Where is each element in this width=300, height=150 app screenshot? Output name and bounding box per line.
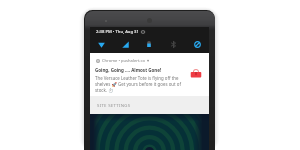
staticText: The Versace Leather Tote is flying off t…: [95, 75, 188, 93]
staticText: 2:38 PM • Thu, Aug 31: [96, 29, 139, 35]
button[interactable]: Battery: [137, 36, 161, 52]
staticText: SITE SETTINGS: [97, 102, 131, 108]
button[interactable]: Bluetooth: [161, 36, 185, 52]
staticText: Chrome • pushalert.co ▾: [102, 58, 150, 64]
staticText: Going, Going .... Almost Gone!: [95, 67, 162, 73]
button[interactable]: Mobile signal: [113, 36, 137, 52]
button[interactable]: SITE SETTINGS: [90, 96, 209, 114]
button[interactable]: Auto rotate: [185, 36, 209, 52]
button[interactable]: Wi-Fi: [90, 36, 113, 52]
